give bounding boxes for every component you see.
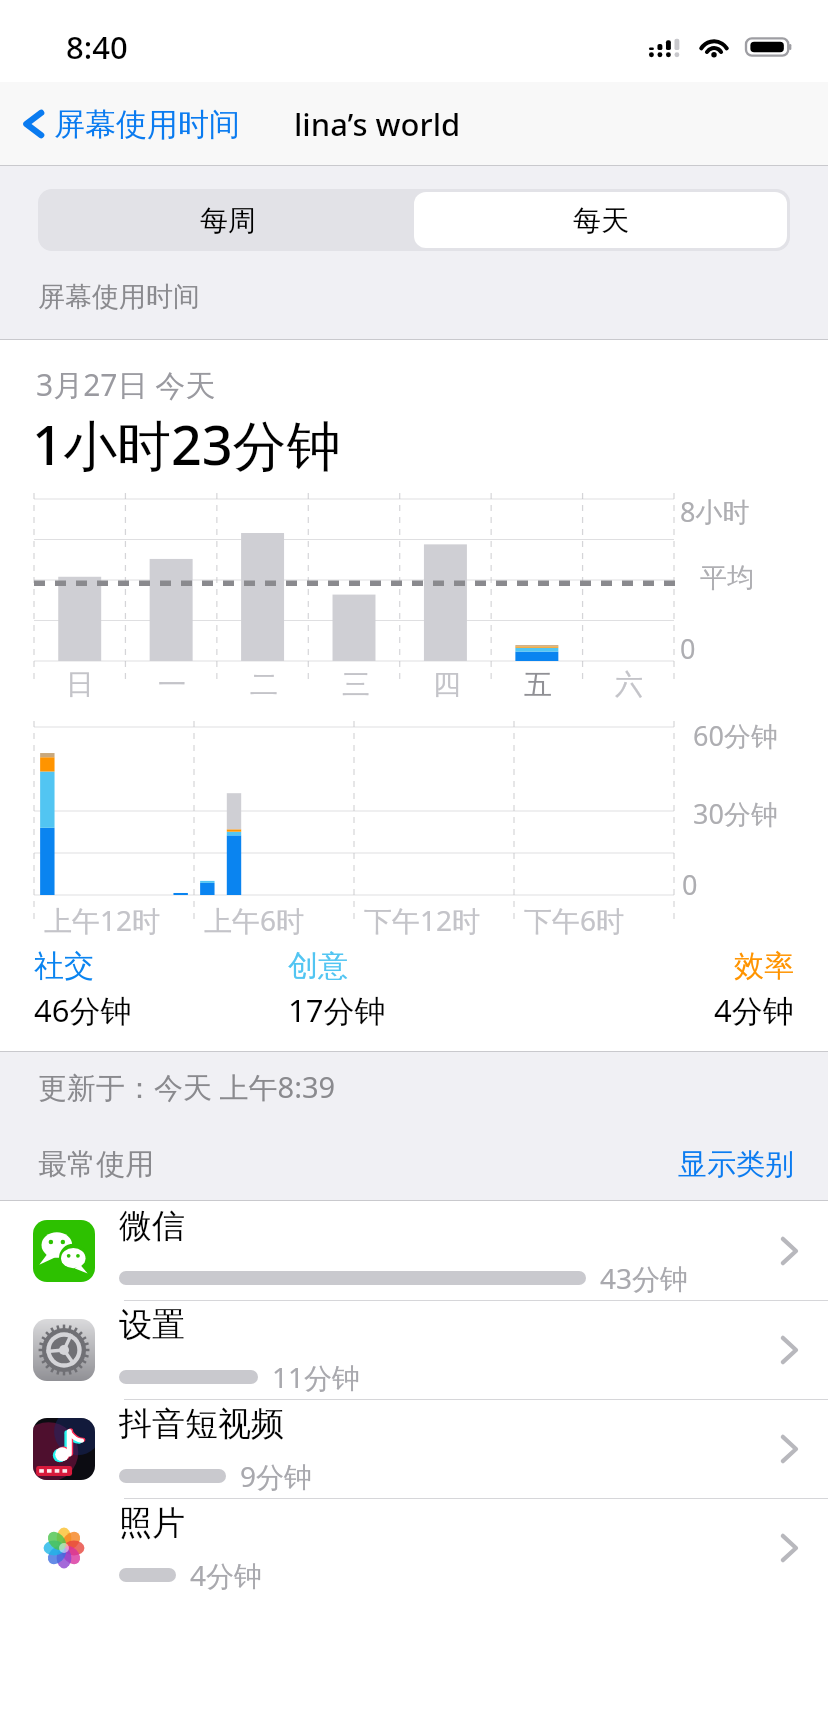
staticText: 8小时 bbox=[680, 493, 750, 530]
staticText: 0 bbox=[682, 866, 698, 903]
button[interactable]: 照片 bbox=[0, 1498, 828, 1597]
staticText: 三 bbox=[342, 667, 370, 702]
staticText: 六 bbox=[615, 667, 643, 702]
staticText: 平均 bbox=[700, 561, 754, 595]
staticText: 46分钟 bbox=[34, 989, 132, 1031]
staticText: 4分钟 bbox=[190, 1556, 263, 1594]
button[interactable]: 每周 bbox=[41, 192, 414, 248]
staticText: 屏幕使用时间 bbox=[38, 280, 200, 314]
staticText: 上午12时 bbox=[44, 901, 161, 939]
staticText: 1小时23分钟 bbox=[32, 407, 341, 481]
staticText: 11分钟 bbox=[272, 1358, 361, 1396]
button[interactable]: 屏幕使用时间 bbox=[16, 96, 246, 152]
staticText: 每周 bbox=[200, 203, 256, 238]
staticText: 上午6时 bbox=[204, 901, 305, 939]
staticText: 日 bbox=[66, 667, 94, 702]
staticText: 设置 bbox=[119, 1304, 185, 1346]
staticText: 屏幕使用时间 bbox=[54, 105, 240, 144]
staticText: 30分钟 bbox=[693, 795, 778, 832]
button[interactable]: 微信 bbox=[0, 1201, 828, 1300]
staticText: 效率 bbox=[734, 947, 794, 985]
staticText: 9分钟 bbox=[240, 1457, 313, 1495]
staticText: 照片 bbox=[119, 1502, 185, 1544]
staticText: 每天 bbox=[573, 203, 629, 238]
staticText: 抖音短视频 bbox=[119, 1403, 284, 1445]
other: 详情 bbox=[778, 1430, 800, 1468]
button[interactable]: 设置 bbox=[0, 1300, 828, 1399]
staticText: 60分钟 bbox=[693, 717, 778, 754]
staticText: 43分钟 bbox=[600, 1259, 689, 1297]
staticText: 3月27日 今天 bbox=[36, 364, 216, 405]
staticText: 四 bbox=[433, 667, 461, 702]
staticText: 最常使用 bbox=[38, 1146, 154, 1183]
staticText: 创意 bbox=[288, 947, 348, 985]
other: 详情 bbox=[778, 1529, 800, 1567]
staticText: 0 bbox=[680, 630, 696, 667]
other: 详情 bbox=[778, 1331, 800, 1369]
staticText: 下午6时 bbox=[524, 901, 625, 939]
button[interactable]: 抖音短视频 bbox=[0, 1399, 828, 1498]
staticText: 下午12时 bbox=[364, 901, 481, 939]
staticText: 二 bbox=[250, 667, 278, 702]
staticText: 8:40 bbox=[66, 26, 128, 68]
staticText: 一 bbox=[158, 667, 186, 702]
other: 详情 bbox=[778, 1232, 800, 1270]
staticText: 显示类别 bbox=[678, 1146, 794, 1183]
staticText: lina’s world bbox=[294, 103, 461, 145]
staticText: 五 bbox=[524, 667, 552, 702]
button[interactable]: 显示类别 bbox=[644, 1136, 828, 1193]
staticText: 4分钟 bbox=[714, 989, 794, 1031]
staticText: 更新于：今天 上午8:39 bbox=[38, 1067, 336, 1107]
button[interactable]: 每天 bbox=[414, 192, 787, 248]
staticText: 17分钟 bbox=[288, 989, 386, 1031]
staticText: 微信 bbox=[119, 1205, 185, 1247]
staticText: 社交 bbox=[34, 947, 94, 985]
